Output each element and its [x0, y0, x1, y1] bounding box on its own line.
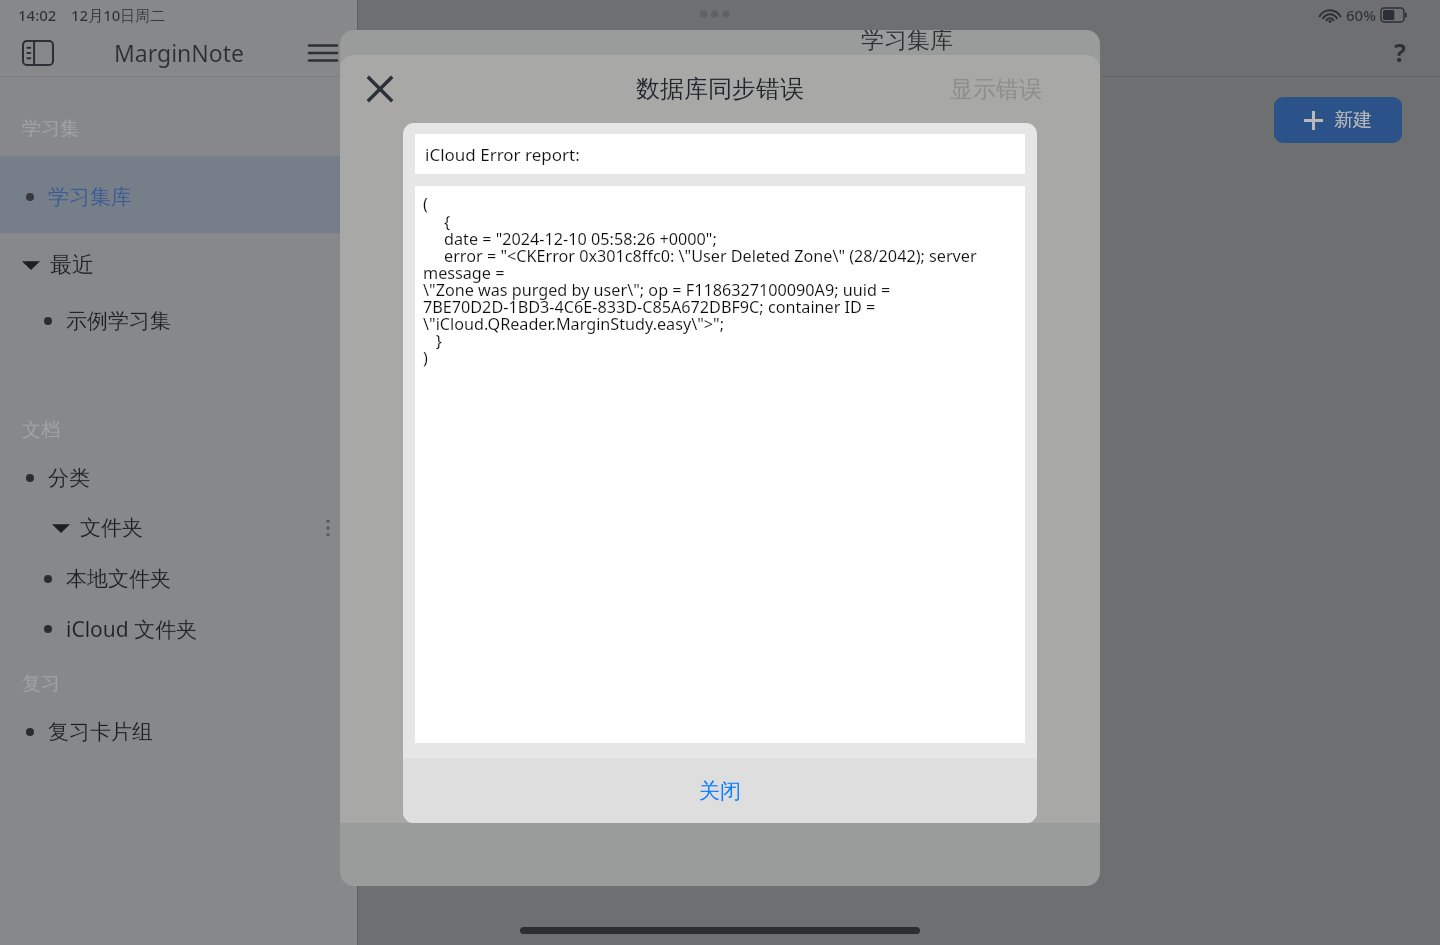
staticText: 复习 [22, 672, 60, 696]
button[interactable]: 文档 [22, 413, 60, 447]
staticText: ? [1394, 35, 1406, 69]
staticText: 文件夹 [80, 515, 143, 541]
staticText: 60% [1346, 5, 1376, 25]
button[interactable]: 显示错误 [950, 75, 1042, 104]
staticText: 本地文件夹 [66, 566, 171, 592]
staticText: 文档 [22, 418, 60, 442]
staticText: 学习集 [22, 117, 79, 141]
button[interactable]: Toggle sidebar [14, 30, 62, 75]
staticText: 学习集库 [861, 30, 953, 55]
staticText: iCloud 文件夹 [66, 615, 198, 644]
staticText: 新建 [1334, 108, 1372, 132]
button[interactable]: More options [310, 510, 346, 546]
button[interactable]: 文件夹 [0, 510, 357, 546]
staticText: 最近 [50, 251, 94, 279]
staticText: 示例学习集 [66, 308, 171, 334]
staticText: iCloud Error report: [425, 143, 580, 166]
staticText: ( { date = "2024-12-10 05:58:26 +0000"; … [423, 193, 1021, 368]
button[interactable]: 学习集 [22, 112, 79, 146]
staticText: 复习卡片组 [48, 719, 153, 745]
button[interactable]: iCloud Error report: [415, 134, 1025, 174]
button[interactable]: 示例学习集 [0, 303, 357, 339]
staticText: 分类 [48, 465, 90, 491]
button[interactable]: ( { date = "2024-12-10 05:58:26 +0000"; … [415, 186, 1025, 743]
staticText: 关闭 [699, 778, 741, 804]
button[interactable]: 学习集库 [0, 156, 357, 233]
button[interactable]: 最近 [22, 248, 94, 282]
button[interactable]: Menu [299, 30, 347, 75]
button[interactable]: 复习 [22, 667, 60, 701]
button[interactable]: 本地文件夹 [0, 561, 357, 597]
button[interactable]: 关闭 [403, 758, 1037, 823]
button[interactable]: iCloud 文件夹 [0, 611, 357, 647]
button[interactable]: 复习卡片组 [0, 714, 357, 750]
staticText: MarginNote [114, 37, 244, 68]
staticText: 学习集库 [48, 184, 132, 210]
button[interactable]: 新建 [1274, 97, 1402, 143]
staticText: 12月10日周二 [71, 5, 166, 25]
staticText: 显示错误 [950, 75, 1042, 104]
button[interactable]: Help [1378, 30, 1422, 74]
button[interactable]: 分类 [0, 460, 357, 496]
staticText: 14:02 [18, 5, 57, 25]
staticText: 数据库同步错误 [636, 74, 804, 104]
button[interactable]: Close [354, 63, 406, 115]
